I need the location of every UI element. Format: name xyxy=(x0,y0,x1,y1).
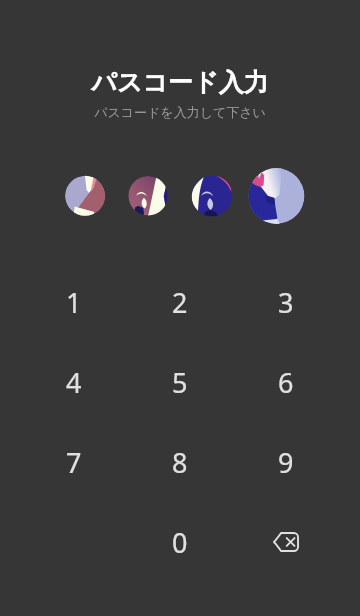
button[interactable]: 3 xyxy=(233,262,339,342)
staticText: 2 xyxy=(172,284,188,321)
staticText: 0 xyxy=(172,524,188,561)
staticText: 9 xyxy=(278,444,294,481)
staticText: パスコードを入力して下さい xyxy=(94,104,266,120)
staticText: 6 xyxy=(278,364,294,401)
button[interactable]: 4 xyxy=(21,342,127,422)
button[interactable]: 1 xyxy=(21,262,127,342)
button[interactable]: 7 xyxy=(21,422,127,502)
staticText: 8 xyxy=(172,444,188,481)
staticText: パスコード入力 xyxy=(91,67,269,98)
button[interactable]: 2 xyxy=(127,262,233,342)
button[interactable]: 5 xyxy=(127,342,233,422)
button[interactable]: 9 xyxy=(233,422,339,502)
staticText: 1 xyxy=(66,284,82,321)
button[interactable]: 8 xyxy=(127,422,233,502)
button[interactable]: 0 xyxy=(127,502,233,582)
staticText: 5 xyxy=(172,364,188,401)
staticText: 3 xyxy=(278,284,294,321)
staticText: 7 xyxy=(66,444,82,481)
button[interactable]: Backspace xyxy=(233,502,339,582)
button[interactable]: 6 xyxy=(233,342,339,422)
staticText: 4 xyxy=(66,364,82,401)
